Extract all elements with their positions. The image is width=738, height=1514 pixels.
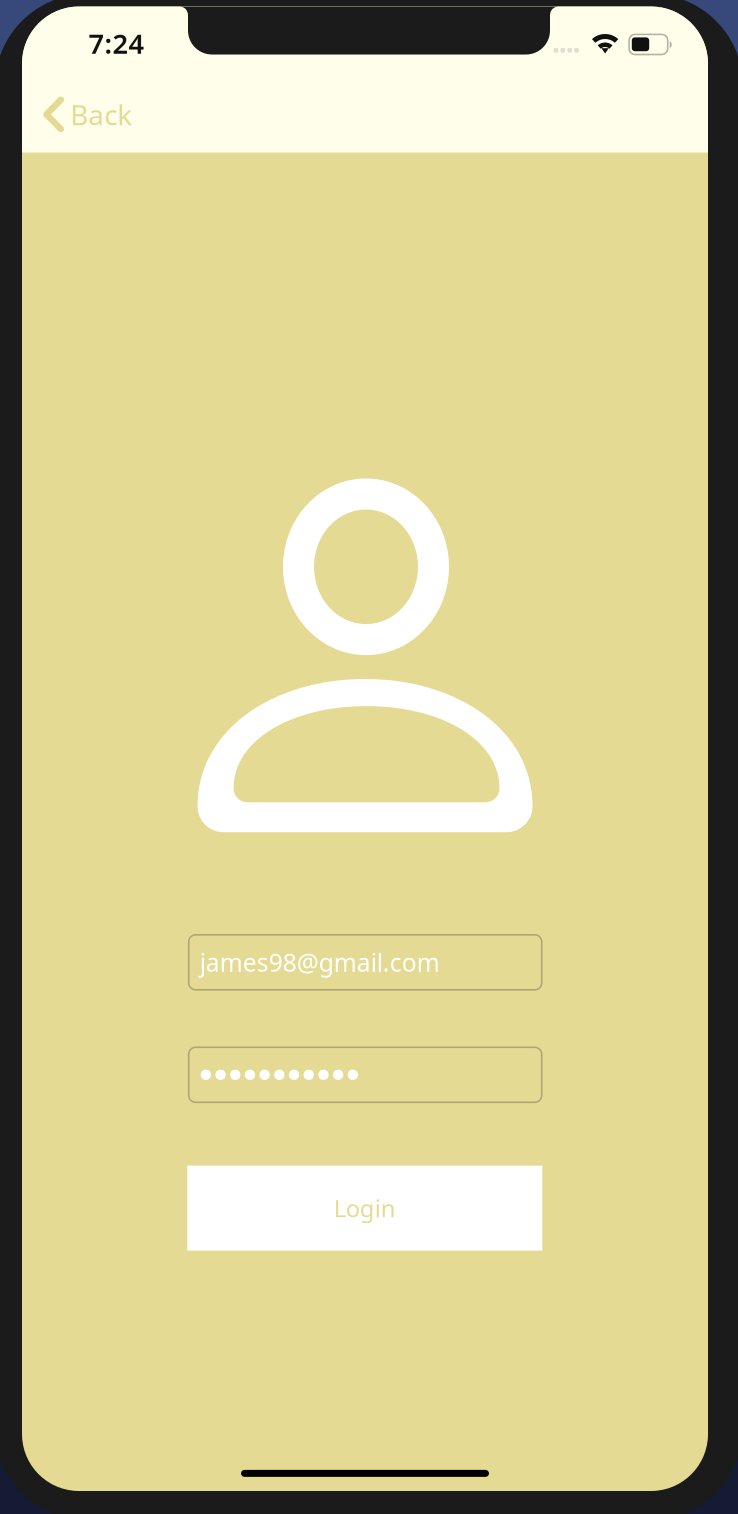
staticText: Back [70,95,132,133]
button[interactable]: Login [187,1166,542,1251]
button[interactable]: Back [22,86,148,142]
staticText: james98@gmail.com [200,946,440,979]
staticText: Login [334,1192,396,1224]
staticText: 7:24 [88,25,144,62]
